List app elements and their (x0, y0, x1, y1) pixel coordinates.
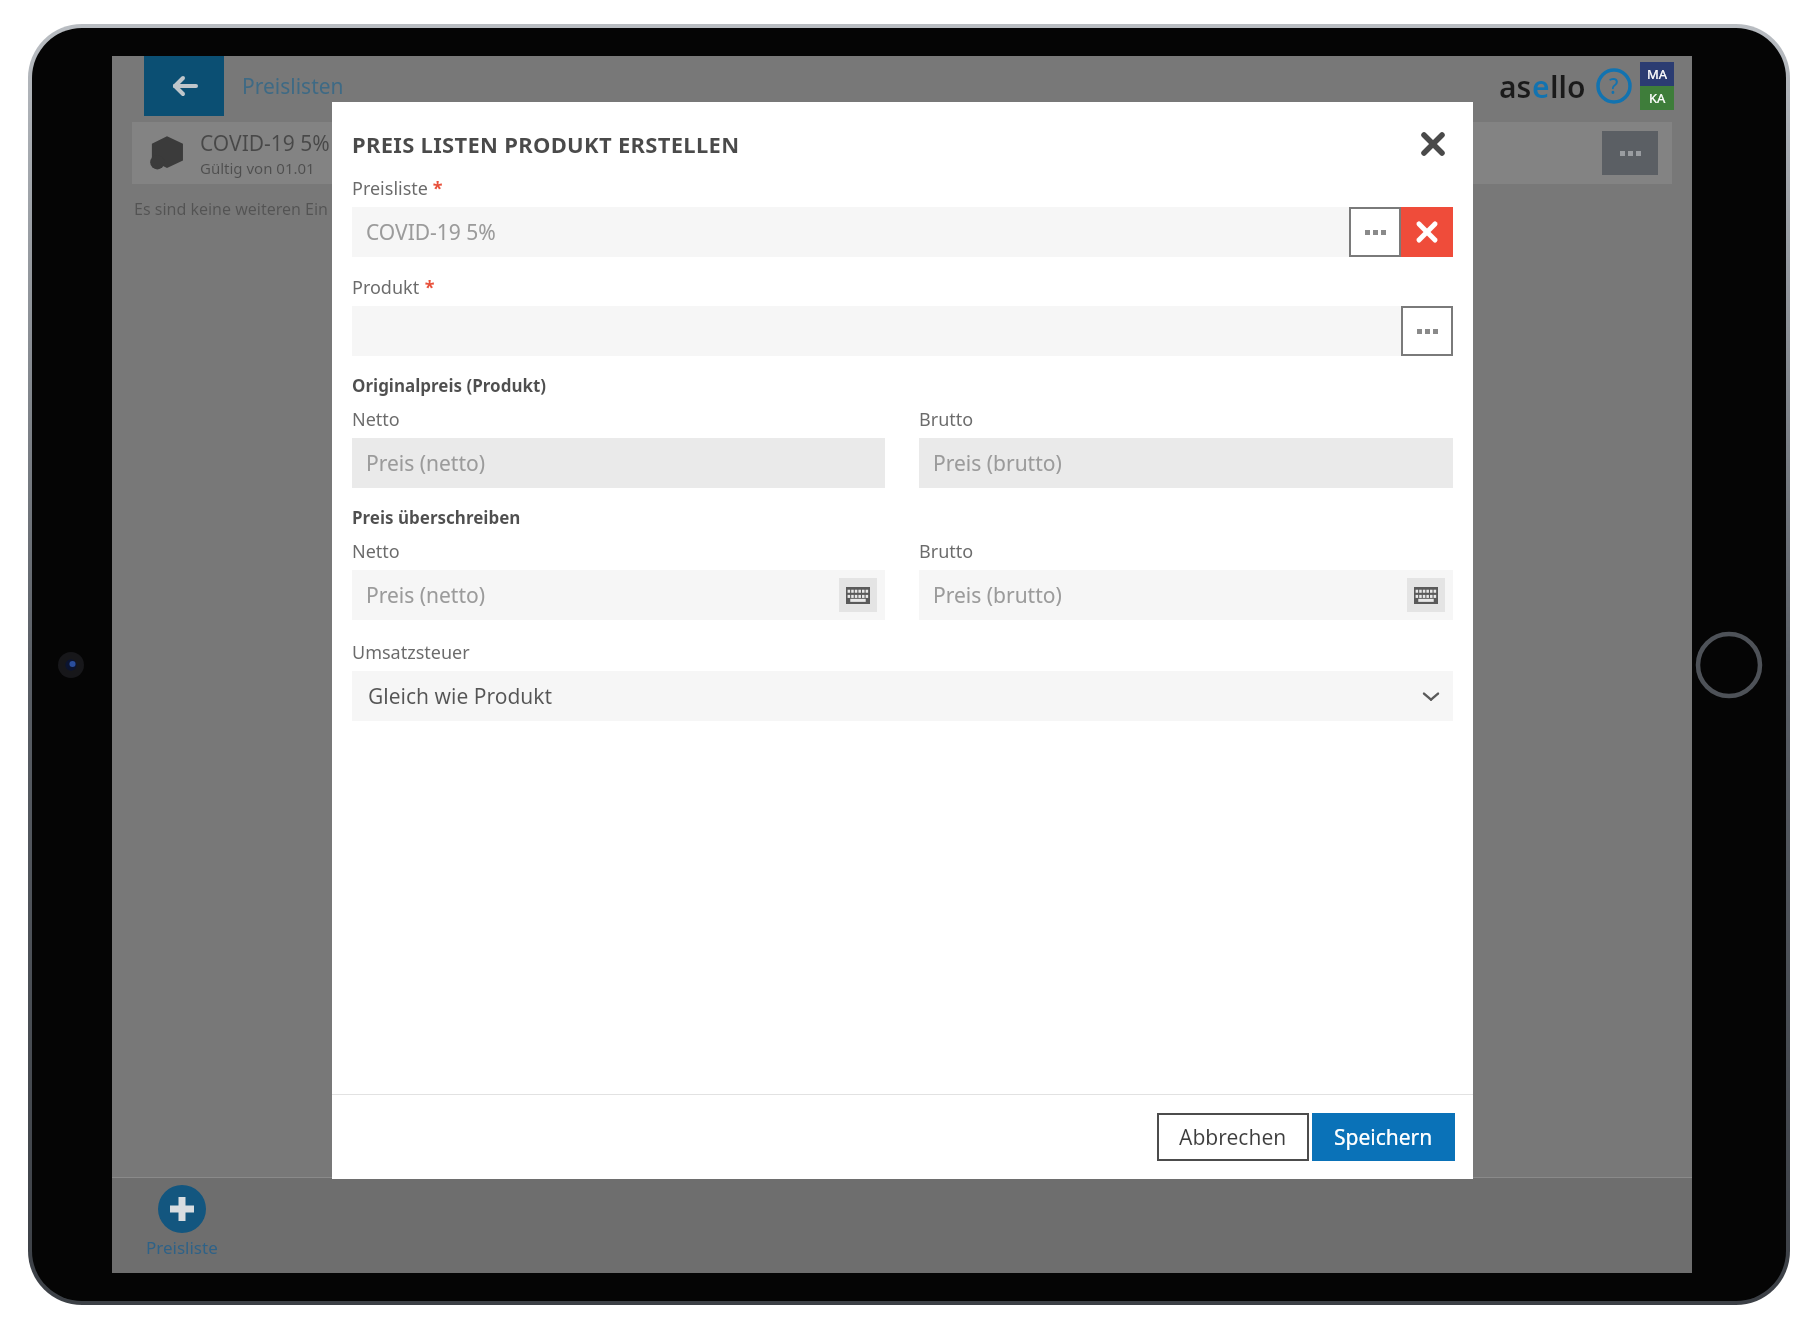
staticText: Umsatzsteuer (352, 640, 470, 665)
button[interactable]: Preisliste auswählen (1349, 207, 1401, 257)
staticText: Gültig von 01.01 (200, 158, 315, 178)
staticText: Preis (brutto) (933, 449, 1062, 478)
button[interactable]: Tastatur (1407, 578, 1445, 612)
staticText: Netto (352, 539, 400, 564)
staticText: Preis (netto) (366, 449, 486, 478)
button[interactable]: Preisliste (146, 1185, 218, 1259)
button[interactable]: Preis (brutto) (919, 438, 1453, 488)
staticText: Preis überschreiben (352, 506, 521, 529)
staticText: Produkt (352, 275, 420, 300)
staticText: Es sind keine weiteren Ein (134, 198, 328, 220)
button[interactable]: Produkt auswählen (1401, 306, 1453, 356)
staticText: COVID-19 5% (366, 218, 496, 247)
staticText: Speichern (1334, 1123, 1433, 1152)
button[interactable]: Preis (brutto) (919, 570, 1453, 620)
button[interactable]: Zurück (144, 56, 224, 116)
staticText: Preis (brutto) (933, 581, 1062, 610)
staticText: * (420, 275, 435, 300)
staticText: as (1499, 66, 1532, 107)
staticText: COVID-19 5% (200, 129, 330, 158)
staticText: e (1532, 66, 1550, 107)
button[interactable]: COVID-19 5% (352, 207, 1349, 257)
button[interactable]: Mehr Optionen (1602, 131, 1658, 175)
staticText: llo (1550, 66, 1586, 107)
staticText: Gleich wie Produkt (368, 682, 553, 711)
staticText: MA (1647, 65, 1668, 83)
button[interactable]: Preis (netto) (352, 438, 885, 488)
button[interactable]: COVID-19 5% (132, 122, 1672, 184)
button[interactable]: Speichern (1312, 1113, 1455, 1161)
button[interactable]: Hilfe (1596, 68, 1632, 104)
staticText: ? (1609, 72, 1619, 101)
staticText: * (428, 176, 443, 201)
staticText: Preisliste (146, 1236, 218, 1259)
button[interactable]: Preisliste entfernen (1401, 207, 1453, 257)
button[interactable]: Preis (netto) (352, 570, 885, 620)
button[interactable]: Gleich wie Produkt (352, 671, 1453, 721)
staticText: KA (1649, 89, 1666, 107)
staticText: Originalpreis (Produkt) (352, 374, 547, 397)
button[interactable]: Schließen (1413, 124, 1453, 164)
staticText: PREIS LISTEN PRODUKT ERSTELLEN (352, 129, 740, 159)
button[interactable]: Abbrechen (1157, 1113, 1309, 1161)
staticText: Preisliste (352, 176, 428, 201)
staticText: Netto (352, 407, 400, 432)
button[interactable]: Tastatur (839, 578, 877, 612)
staticText: Preislisten (242, 72, 344, 101)
staticText: Abbrechen (1179, 1123, 1287, 1152)
button[interactable]: Benutzer (1640, 62, 1674, 110)
staticText: Brutto (919, 539, 974, 564)
staticText: Brutto (919, 407, 974, 432)
staticText: Preis (netto) (366, 581, 486, 610)
